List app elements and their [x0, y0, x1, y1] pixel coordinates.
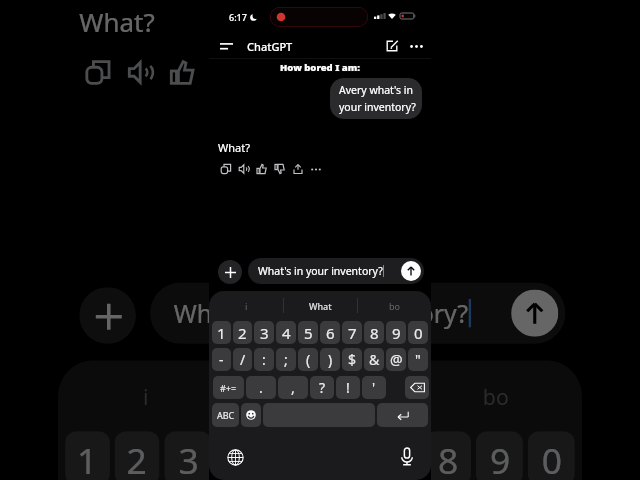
button[interactable]: ? — [310, 376, 334, 399]
button[interactable]: 9 — [386, 321, 406, 344]
button[interactable]: 4 — [216, 431, 263, 480]
button[interactable]: 2 — [233, 321, 252, 344]
button[interactable]: Share — [289, 160, 307, 178]
button[interactable]: Add attachment — [218, 260, 242, 284]
staticText: Avery what's in your inventory? — [339, 83, 416, 114]
staticText: 6 — [326, 323, 335, 343]
button[interactable]: 6 — [320, 321, 340, 344]
staticText: What? — [79, 4, 155, 39]
button[interactable]: What's in your inventory? — [248, 258, 424, 284]
button[interactable]: i — [58, 360, 233, 429]
button[interactable]: 3 — [254, 321, 274, 344]
button[interactable]: Avery what's in your inventory? — [330, 78, 422, 119]
button[interactable]: ' — [362, 376, 386, 399]
button[interactable]: ) — [320, 348, 340, 371]
button[interactable]: Bad response — [271, 160, 289, 178]
button[interactable]: ( — [298, 348, 318, 371]
button[interactable]: What — [235, 360, 407, 429]
button[interactable]: 4 — [276, 321, 296, 344]
button[interactable]: New chat — [382, 36, 402, 56]
button[interactable]: Send — [401, 261, 421, 281]
button[interactable]: 7 — [342, 321, 362, 344]
button[interactable]: @ — [386, 348, 406, 371]
button[interactable]: ; — [276, 348, 296, 371]
button[interactable]: 1 — [65, 431, 110, 480]
button[interactable]: What's in your inventory? — [150, 282, 565, 344]
button[interactable]: bo — [410, 360, 582, 429]
button[interactable]: / — [233, 348, 252, 371]
button[interactable]: Emoji — [241, 403, 261, 427]
staticText: How bored I am: — [279, 60, 359, 73]
button[interactable]: Enter — [377, 403, 428, 427]
staticText: bo — [389, 300, 400, 312]
button[interactable]: " — [408, 348, 428, 371]
button[interactable]: 7 — [372, 431, 419, 480]
button[interactable]: More — [289, 51, 332, 94]
button[interactable]: What — [284, 291, 357, 320]
button[interactable]: Backspace — [405, 376, 429, 399]
staticText: 8 — [370, 323, 379, 343]
staticText: ) — [328, 350, 333, 369]
staticText: How bored I am: — [280, 61, 360, 74]
button[interactable]: ABC — [212, 403, 239, 427]
staticText: 5 — [304, 323, 313, 343]
staticText: ; — [284, 350, 288, 369]
button[interactable]: Share — [247, 51, 289, 94]
button[interactable]: , — [278, 376, 308, 399]
staticText: bo — [483, 382, 509, 410]
staticText: What — [309, 300, 332, 312]
button[interactable]: $ — [342, 348, 362, 371]
staticText: / — [240, 350, 246, 369]
button[interactable]: 0 — [408, 321, 428, 344]
button[interactable]: . — [246, 376, 276, 399]
button[interactable]: #+= — [213, 376, 244, 399]
button[interactable]: More — [307, 160, 325, 178]
staticText: 3 — [260, 323, 269, 343]
button[interactable]: - — [212, 348, 231, 371]
staticText: i — [143, 382, 150, 410]
button[interactable]: Copy — [217, 160, 235, 178]
staticText: What — [294, 382, 348, 410]
button[interactable]: 0 — [528, 431, 575, 480]
button[interactable]: Read aloud — [119, 51, 162, 94]
button[interactable]: Good response — [253, 160, 271, 178]
button[interactable]: More options — [406, 36, 426, 56]
staticText: What's in your inventory? — [258, 264, 383, 278]
button[interactable]: bo — [358, 291, 431, 320]
button[interactable]: Send — [511, 290, 558, 337]
button[interactable]: 5 — [298, 321, 318, 344]
staticText: How bored I am: — [281, 62, 361, 75]
button[interactable]: Voice input — [395, 445, 419, 469]
staticText: 0 — [414, 323, 423, 343]
button[interactable]: : — [254, 348, 274, 371]
button[interactable]: 8 — [424, 431, 471, 480]
staticText: $ — [348, 350, 357, 369]
button[interactable]: Add attachment — [79, 287, 136, 344]
button[interactable]: i — [209, 291, 283, 320]
button[interactable]: Read aloud — [235, 160, 253, 178]
button[interactable]: 1 — [212, 321, 231, 344]
button[interactable]: 9 — [476, 431, 523, 480]
staticText: 3 — [178, 436, 200, 480]
button[interactable]: Change language — [223, 445, 247, 469]
button[interactable]: 8 — [364, 321, 384, 344]
staticText: 2 — [238, 323, 247, 343]
staticText: ' — [372, 378, 376, 397]
staticText: 7 — [348, 323, 357, 343]
button[interactable]: Copy — [77, 51, 119, 94]
staticText: : — [262, 350, 266, 369]
button[interactable]: ! — [336, 376, 360, 399]
button[interactable]: Menu — [217, 37, 235, 55]
button[interactable]: 2 — [115, 431, 159, 480]
staticText: 9 — [490, 436, 511, 480]
button[interactable]: & — [364, 348, 384, 371]
button[interactable]: 3 — [164, 431, 211, 480]
staticText: @ — [390, 350, 403, 369]
staticText: 7 — [386, 436, 407, 480]
button[interactable]: Good response — [162, 51, 204, 94]
